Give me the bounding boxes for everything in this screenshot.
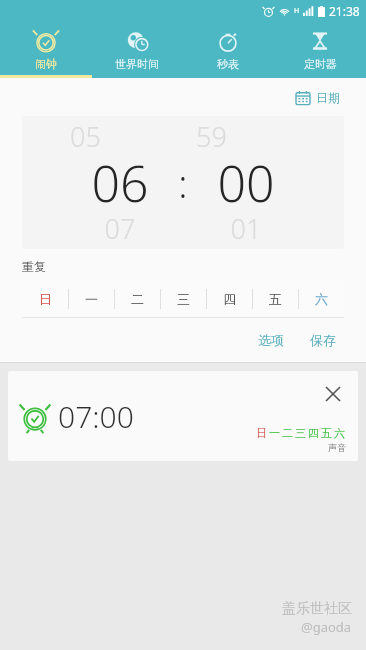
button[interactable]: 五 xyxy=(252,281,298,317)
staticText: 59 xyxy=(196,118,296,155)
button[interactable]: 四 xyxy=(206,281,252,317)
button[interactable]: 选项 xyxy=(250,328,292,352)
staticText: 21:38 xyxy=(329,3,360,19)
staticText: 盖乐世社区 xyxy=(282,600,352,618)
staticText: 秒表 xyxy=(217,57,239,71)
staticText: 五 xyxy=(321,426,332,440)
button[interactable]: 07:00 xyxy=(8,371,358,461)
button[interactable]: 二 xyxy=(114,281,160,317)
staticText: 二 xyxy=(282,426,293,440)
staticText: 六 xyxy=(315,291,328,307)
button[interactable]: 六 xyxy=(298,281,344,317)
staticText: @gaoda xyxy=(301,618,352,636)
staticText: 定时器 xyxy=(304,57,337,71)
button[interactable]: 定时器 xyxy=(274,22,366,78)
staticText: 07 xyxy=(70,210,170,247)
button[interactable]: 三 xyxy=(160,281,206,317)
staticText: 一 xyxy=(269,426,280,440)
button[interactable]: 日期 xyxy=(292,88,344,107)
button[interactable]: 一 xyxy=(68,281,114,317)
staticText: 四 xyxy=(223,291,236,307)
staticText: 五 xyxy=(269,291,282,307)
button[interactable]: 秒表 xyxy=(182,22,274,78)
staticText: 重复 xyxy=(22,259,46,274)
staticText: : xyxy=(170,157,196,209)
staticText: 三 xyxy=(295,426,306,440)
staticText: 六 xyxy=(334,426,345,440)
button[interactable]: 世界时间 xyxy=(91,22,182,78)
staticText: 日 xyxy=(39,291,52,307)
button[interactable]: 05 xyxy=(22,116,344,249)
staticText: 日 xyxy=(256,426,267,440)
staticText: 06 xyxy=(70,149,170,217)
staticText: 三 xyxy=(177,291,190,307)
staticText: H xyxy=(294,6,300,16)
button[interactable]: 日 xyxy=(22,281,68,317)
staticText: 保存 xyxy=(310,332,336,348)
staticText: 07:00 xyxy=(58,396,134,437)
staticText: 二 xyxy=(131,291,144,307)
staticText: 闹钟 xyxy=(35,57,57,71)
staticText: 选项 xyxy=(258,332,284,348)
staticText: 00 xyxy=(196,149,296,217)
staticText: 声音 xyxy=(328,442,346,453)
staticText: 四 xyxy=(308,426,319,440)
staticText: 日期 xyxy=(316,90,340,105)
staticText: 05 xyxy=(70,118,170,155)
staticText: 世界时间 xyxy=(115,57,159,71)
button[interactable]: Delete alarm xyxy=(320,381,346,407)
button[interactable]: 保存 xyxy=(302,328,344,352)
button[interactable]: 闹钟 xyxy=(0,22,91,78)
staticText: 01 xyxy=(196,210,296,247)
staticText: 一 xyxy=(85,291,98,307)
